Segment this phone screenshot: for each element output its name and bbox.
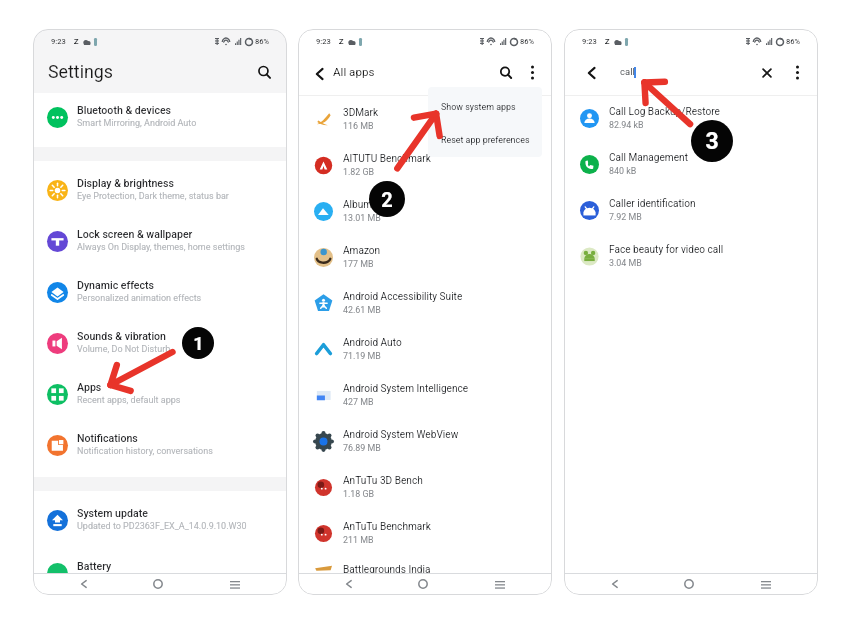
button[interactable]: Apps — [33, 373, 287, 424]
button[interactable]: Album — [298, 191, 552, 237]
staticText: 9:23 — [582, 37, 597, 46]
button[interactable]: Call Log Backup/Restore — [564, 98, 818, 144]
staticText: Battlegrounds India — [343, 564, 431, 576]
button[interactable]: Back — [71, 573, 97, 595]
staticText: 9:23 — [51, 37, 66, 46]
button[interactable]: Search — [492, 59, 520, 87]
staticText: 2 — [381, 188, 393, 211]
button[interactable]: AnTuTu 3D Bench — [298, 467, 552, 513]
staticText: 86% — [786, 37, 801, 46]
button[interactable]: More options — [518, 58, 547, 87]
button[interactable]: Recent apps — [753, 573, 779, 595]
staticText: 86% — [255, 37, 270, 46]
staticText: Updated to PD2363F_EX_A_14.0.9.10.W30 — [77, 521, 247, 532]
staticText: 9:23 — [316, 37, 331, 46]
staticText: Call Log Backup/Restore — [609, 106, 720, 118]
staticText: 3DMark — [343, 107, 379, 119]
button[interactable]: Dynamic effects — [33, 271, 287, 322]
button[interactable]: More options — [783, 58, 812, 87]
staticText: Notifications — [77, 432, 138, 444]
staticText: 71.19 MB — [343, 351, 381, 361]
button[interactable]: Android System Intelligence — [298, 375, 552, 421]
staticText: 211 MB — [343, 535, 374, 545]
staticText: Settings — [48, 61, 113, 82]
staticText: 116 MB — [343, 121, 374, 131]
staticText: Album — [343, 199, 373, 211]
button[interactable]: Android Auto — [298, 329, 552, 375]
button[interactable]: Recent apps — [222, 573, 248, 595]
button[interactable]: Display & brightness — [33, 169, 287, 220]
button[interactable]: Face beauty for video call — [564, 236, 818, 282]
staticText: Android System WebView — [343, 429, 459, 441]
button[interactable]: AnTuTu Benchmark — [298, 513, 552, 559]
staticText: 177 MB — [343, 259, 374, 269]
button[interactable]: Search — [250, 58, 279, 87]
button[interactable]: Home — [145, 573, 171, 595]
staticText: Z — [605, 37, 610, 46]
staticText: 3 — [705, 128, 719, 155]
button[interactable]: 3DMark — [298, 99, 552, 145]
button[interactable]: Clear search — [753, 59, 781, 87]
button[interactable]: Battery — [33, 552, 287, 595]
staticText: Reset app preferences — [441, 135, 530, 145]
staticText: Display & brightness — [77, 177, 174, 189]
staticText: Always On Display, themes, home settings — [77, 242, 245, 253]
staticText: Battery — [77, 560, 112, 572]
staticText: 82.94 kB — [609, 120, 644, 130]
staticText: Face beauty for video call — [609, 244, 724, 256]
staticText: Android System Intelligence — [343, 383, 469, 395]
button[interactable]: Android Accessibility Suite — [298, 283, 552, 329]
staticText: Smart Mirroring, Android Auto — [77, 118, 197, 129]
staticText: 7.92 MB — [609, 212, 642, 222]
staticText: Personalized animation effects — [77, 293, 202, 304]
staticText: Lock screen & wallpaper — [77, 228, 193, 240]
staticText: 427 MB — [343, 397, 374, 407]
staticText: Android Accessibility Suite — [343, 291, 463, 303]
staticText: 840 kB — [609, 166, 637, 176]
button[interactable]: Back — [305, 59, 335, 89]
staticText: Apps — [77, 381, 102, 393]
staticText: 1.18 GB — [343, 489, 375, 499]
staticText: System update — [77, 507, 148, 519]
button[interactable]: Home — [410, 573, 436, 595]
button[interactable]: Home — [676, 573, 702, 595]
staticText: 1 — [193, 333, 204, 354]
button[interactable]: Bluetooth & devices — [33, 96, 287, 147]
button[interactable]: AITUTU Benchmark — [298, 145, 552, 191]
staticText: 76.89 MB — [343, 443, 381, 453]
button[interactable]: Back — [602, 573, 628, 595]
staticText: All apps — [333, 65, 375, 79]
button[interactable]: Caller identification — [564, 190, 818, 236]
staticText: Z — [339, 37, 344, 46]
button[interactable]: Amazon — [298, 237, 552, 283]
staticText: Volume, Do Not Disturb — [77, 344, 171, 355]
button[interactable]: Lock screen & wallpaper — [33, 220, 287, 271]
staticText: Caller identification — [609, 198, 696, 210]
button[interactable]: System update — [33, 499, 287, 550]
staticText: 13.01 MB — [343, 213, 381, 223]
staticText: 1.82 GB — [343, 167, 375, 177]
button[interactable]: Call Management — [564, 144, 818, 190]
button[interactable]: Recent apps — [487, 573, 513, 595]
button[interactable]: Back — [336, 573, 362, 595]
button[interactable]: Notifications — [33, 424, 287, 475]
staticText: Recent apps, default apps — [77, 395, 181, 406]
staticText: AnTuTu 3D Bench — [343, 475, 423, 487]
staticText: 86% — [520, 37, 535, 46]
staticText: 3.04 MB — [609, 258, 642, 268]
button[interactable]: Reset app preferences — [428, 122, 542, 157]
button[interactable]: Sounds & vibration — [33, 322, 287, 373]
staticText: Notification history, conversations — [77, 446, 213, 457]
button[interactable]: Back — [577, 58, 607, 88]
staticText: Sounds & vibration — [77, 330, 167, 342]
staticText: Bluetooth & devices — [77, 104, 172, 116]
button[interactable]: Android System WebView — [298, 421, 552, 467]
staticText: Z — [74, 37, 79, 46]
staticText: Dynamic effects — [77, 279, 155, 291]
staticText: Eye Protection, Dark theme, status bar — [77, 191, 229, 202]
button[interactable]: Show system apps — [428, 87, 542, 122]
staticText: Call Management — [609, 152, 688, 164]
staticText: AITUTU Benchmark — [343, 153, 431, 165]
button[interactable]: Battlegrounds India — [298, 556, 552, 595]
staticText: call — [620, 66, 635, 77]
